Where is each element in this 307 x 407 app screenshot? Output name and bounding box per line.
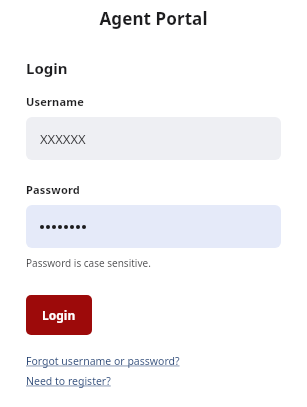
staticText: Login xyxy=(26,58,68,78)
button[interactable] xyxy=(26,205,281,248)
staticText: Password xyxy=(26,182,81,197)
staticText: Password is case sensitive. xyxy=(26,256,151,270)
staticText: Agent Portal xyxy=(0,7,307,30)
staticText: Login xyxy=(42,307,76,323)
button[interactable]: XXXXXX xyxy=(26,117,281,160)
staticText: Need to register? xyxy=(26,374,111,388)
staticText: Forgot username or password? xyxy=(26,354,180,368)
button[interactable]: Need to register? xyxy=(26,374,111,388)
button[interactable]: Login xyxy=(26,295,92,335)
button[interactable]: Forgot username or password? xyxy=(26,354,180,368)
staticText: XXXXXX xyxy=(40,130,86,148)
staticText: Username xyxy=(26,94,84,109)
